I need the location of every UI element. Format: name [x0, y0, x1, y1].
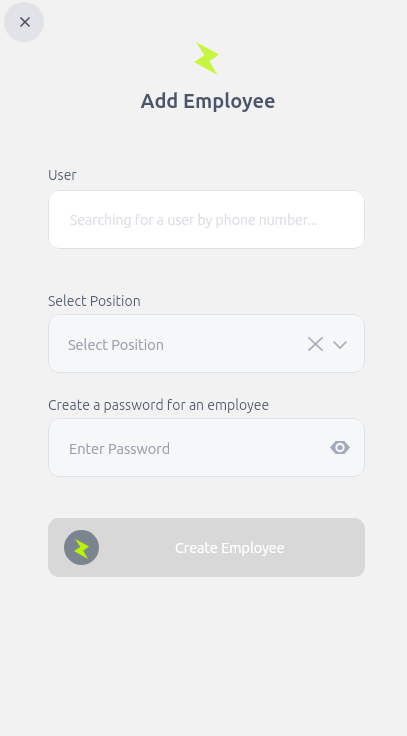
staticText: Select Position [68, 336, 164, 352]
staticText: Create a password for an employee [48, 397, 270, 413]
button[interactable]: Expand [326, 331, 353, 358]
staticText: Enter Password [69, 440, 171, 456]
button[interactable]: Select Position [48, 314, 365, 373]
button[interactable]: Create Employee [48, 518, 365, 577]
button[interactable]: Searching for a user by phone number... [48, 190, 365, 249]
staticText: Create Employee [175, 540, 285, 556]
staticText: User [48, 167, 77, 183]
button[interactable]: Enter Password [48, 418, 365, 477]
button[interactable]: Clear [302, 330, 329, 357]
staticText: Add Employee [140, 89, 276, 111]
staticText: Searching for a user by phone number... [70, 212, 318, 228]
button[interactable]: Show password [325, 433, 354, 462]
staticText: Select Position [48, 293, 141, 309]
button[interactable]: Close [4, 2, 44, 42]
